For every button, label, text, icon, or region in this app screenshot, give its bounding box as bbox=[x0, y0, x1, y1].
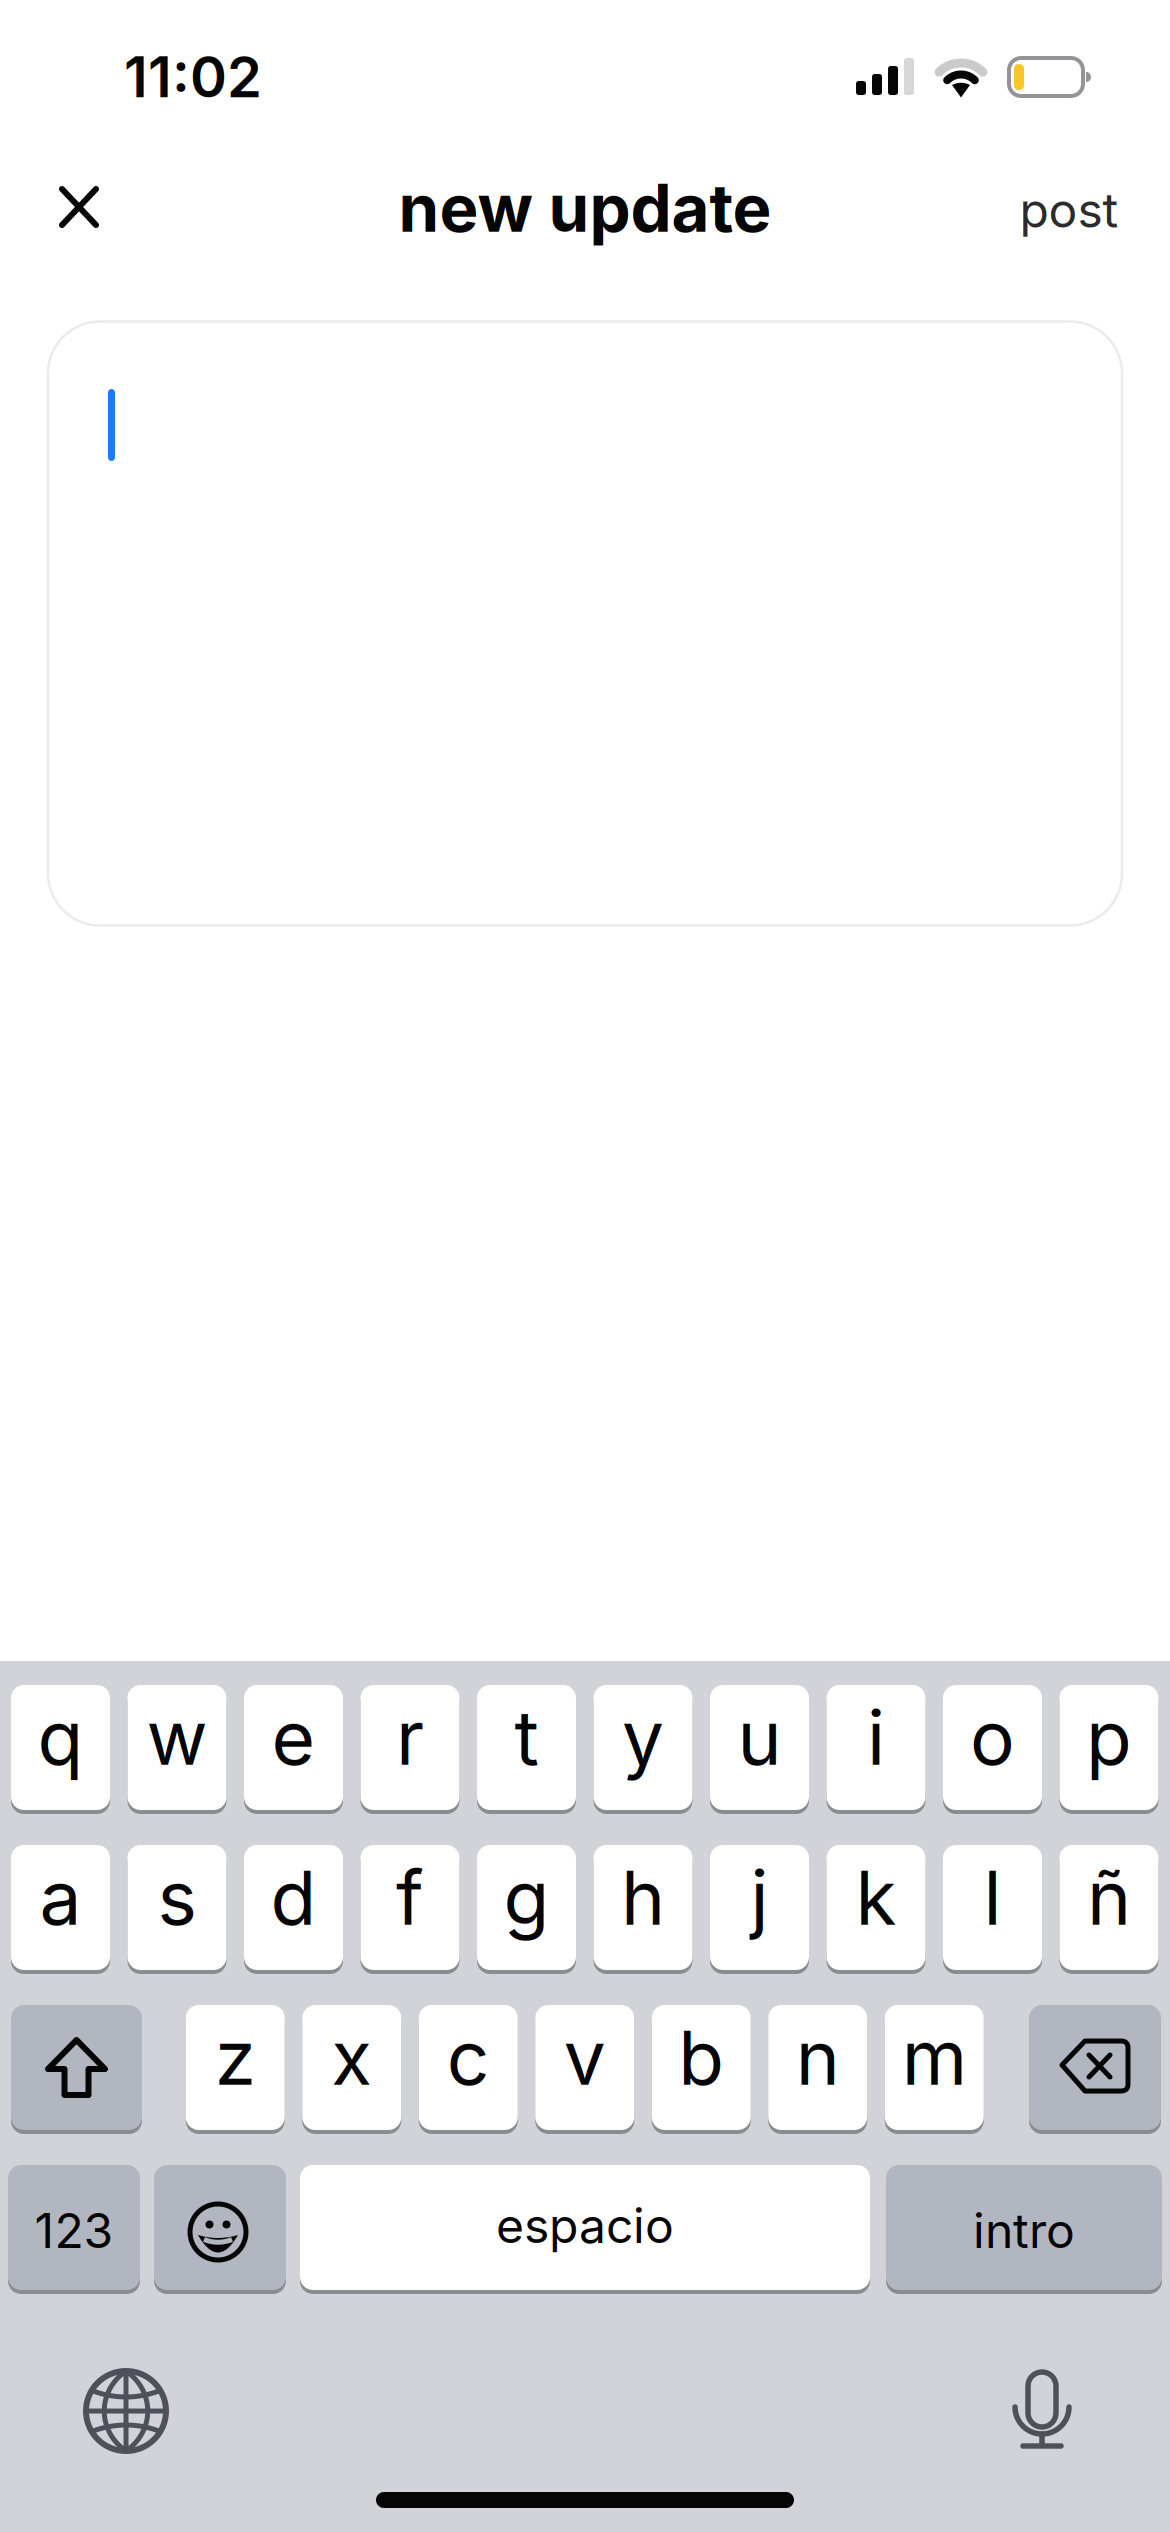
button[interactable]: s bbox=[127, 1843, 226, 1972]
staticText: j bbox=[750, 1853, 768, 1942]
staticText: z bbox=[215, 2013, 256, 2102]
staticText: k bbox=[855, 1853, 896, 1942]
staticText: espacio bbox=[496, 2197, 674, 2254]
button[interactable]: j bbox=[710, 1843, 809, 1972]
staticText: new update bbox=[398, 169, 771, 247]
button[interactable]: f bbox=[360, 1843, 459, 1972]
button[interactable]: espacio bbox=[300, 2163, 870, 2292]
staticText: y bbox=[622, 1693, 664, 1782]
button[interactable]: y bbox=[593, 1683, 692, 1812]
staticText: s bbox=[157, 1853, 196, 1942]
button[interactable] bbox=[11, 2003, 142, 2132]
staticText: o bbox=[970, 1693, 1015, 1782]
button[interactable]: h bbox=[593, 1843, 692, 1972]
button[interactable]: a bbox=[11, 1843, 110, 1972]
staticText: a bbox=[39, 1853, 81, 1942]
staticText: v bbox=[564, 2013, 606, 2102]
button[interactable]: u bbox=[710, 1683, 809, 1812]
staticText: q bbox=[37, 1693, 83, 1782]
staticText: l bbox=[983, 1853, 1001, 1942]
staticText: u bbox=[737, 1693, 781, 1782]
staticText: ñ bbox=[1087, 1853, 1131, 1942]
button[interactable]: t bbox=[477, 1683, 576, 1812]
button[interactable]: g bbox=[477, 1843, 576, 1972]
staticText: 11:02 bbox=[124, 44, 262, 110]
button[interactable]: x bbox=[302, 2003, 401, 2132]
button[interactable]: b bbox=[652, 2003, 751, 2132]
staticText: p bbox=[1086, 1693, 1132, 1782]
button[interactable]: e bbox=[244, 1683, 343, 1812]
button[interactable] bbox=[49, 176, 109, 238]
button[interactable]: o bbox=[943, 1683, 1042, 1812]
button[interactable] bbox=[154, 2163, 286, 2292]
button[interactable] bbox=[1029, 2003, 1161, 2132]
staticText: w bbox=[146, 1693, 207, 1782]
staticText: i bbox=[867, 1693, 885, 1782]
button[interactable]: post bbox=[1019, 182, 1118, 238]
button[interactable]: i bbox=[826, 1683, 925, 1812]
staticText: g bbox=[503, 1853, 549, 1942]
button[interactable]: c bbox=[419, 2003, 518, 2132]
staticText: intro bbox=[973, 2202, 1075, 2259]
staticText: n bbox=[796, 2013, 840, 2102]
button[interactable]: r bbox=[360, 1683, 459, 1812]
staticText: 123 bbox=[34, 2202, 113, 2259]
staticText: b bbox=[678, 2013, 724, 2102]
button[interactable]: z bbox=[186, 2003, 285, 2132]
button[interactable] bbox=[1012, 2356, 1072, 2450]
button[interactable]: w bbox=[127, 1683, 226, 1812]
button[interactable] bbox=[84, 2369, 168, 2453]
button[interactable]: l bbox=[943, 1843, 1042, 1972]
button[interactable]: k bbox=[826, 1843, 925, 1972]
button[interactable]: m bbox=[885, 2003, 984, 2132]
staticText: c bbox=[447, 2013, 490, 2102]
button[interactable]: v bbox=[535, 2003, 634, 2132]
staticText: f bbox=[396, 1853, 424, 1942]
staticText: post bbox=[1019, 182, 1118, 238]
button[interactable]: p bbox=[1059, 1683, 1158, 1812]
button[interactable]: ñ bbox=[1059, 1843, 1158, 1972]
button[interactable] bbox=[48, 321, 1122, 925]
button[interactable]: n bbox=[768, 2003, 867, 2132]
staticText: x bbox=[331, 2013, 372, 2102]
button[interactable]: d bbox=[244, 1843, 343, 1972]
staticText: m bbox=[902, 2013, 967, 2102]
staticText: r bbox=[396, 1693, 424, 1782]
staticText: e bbox=[271, 1693, 315, 1782]
button[interactable]: q bbox=[11, 1683, 110, 1812]
button[interactable]: 123 bbox=[8, 2163, 140, 2292]
staticText: d bbox=[270, 1853, 316, 1942]
staticText: h bbox=[621, 1853, 665, 1942]
button[interactable]: intro bbox=[886, 2163, 1162, 2292]
staticText: t bbox=[514, 1693, 538, 1782]
